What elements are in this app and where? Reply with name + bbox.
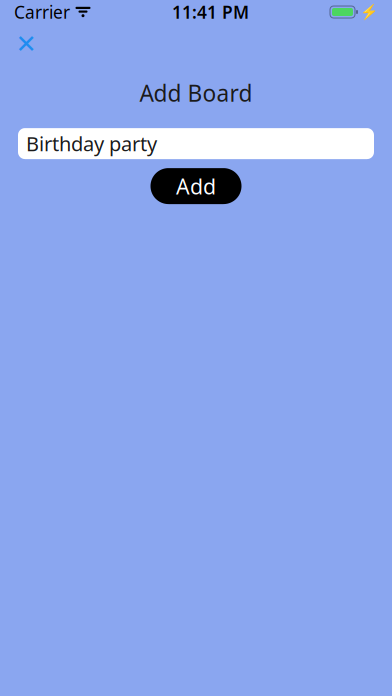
staticText: ⚡ xyxy=(360,4,378,20)
staticText: ✕ xyxy=(15,30,36,58)
staticText: 11:41 PM xyxy=(172,0,249,23)
staticText: Birthday party xyxy=(26,130,157,157)
button[interactable]: Close xyxy=(8,28,44,60)
staticText: Add xyxy=(176,172,216,200)
staticText: Add Board xyxy=(139,78,252,108)
staticText: Carrier xyxy=(14,0,70,23)
button[interactable]: Add xyxy=(150,168,241,204)
